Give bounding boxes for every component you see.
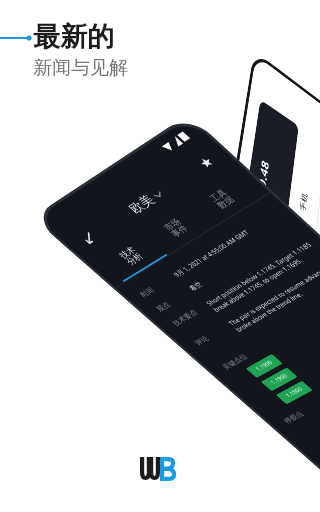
staticText: $56,299.48 xyxy=(248,157,271,232)
staticText: 1.1900 xyxy=(254,359,275,373)
button[interactable]: 技术 分析 xyxy=(101,235,167,282)
staticText: 关键点位 xyxy=(220,352,250,371)
button[interactable]: 欧美 xyxy=(125,187,167,217)
button[interactable]: 工具 数据 xyxy=(190,177,260,227)
button[interactable]: 1.1800 xyxy=(284,386,305,399)
button[interactable]: 市场 事件 xyxy=(144,206,213,255)
staticText: 欧美 xyxy=(125,192,159,217)
staticText: The pair is expected to resume advance a… xyxy=(226,261,320,333)
staticText: 市场 事件 xyxy=(161,216,191,239)
button[interactable]: Back xyxy=(71,225,106,252)
button[interactable]: 1.1900 xyxy=(254,359,275,373)
staticText: 新闻与见解 xyxy=(33,56,128,80)
staticText: 9月 1, 2021 at 4:55:00 AM GMT xyxy=(171,228,251,278)
staticText: 技术要点 xyxy=(170,301,212,328)
staticText: 交易 xyxy=(293,232,303,256)
button[interactable]: 1.1900 xyxy=(269,372,290,386)
staticText: 时间 xyxy=(138,272,179,299)
staticText: 1.1900 xyxy=(269,372,290,386)
staticText: 技术 分析 xyxy=(116,244,146,267)
staticText: 工具 数据 xyxy=(207,187,237,211)
staticText: 1.1800 xyxy=(284,386,305,399)
staticText: 停损点 xyxy=(282,410,306,425)
staticText: / xyxy=(296,218,305,227)
staticText: 观点 xyxy=(154,287,195,314)
staticText: 最新的 xyxy=(33,20,114,54)
staticText: 手机 xyxy=(298,190,308,213)
button[interactable]: Favorite xyxy=(188,148,225,177)
staticText: 评论 xyxy=(193,321,234,347)
staticText: Short position below 1.1745. Target 1.11… xyxy=(204,240,320,314)
staticText: 看空 xyxy=(188,280,205,293)
